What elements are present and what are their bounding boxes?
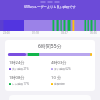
button[interactable]: 1時24分 (8, 60, 50, 71)
staticText: 深い睡眠 62% (54, 67, 71, 71)
staticText: 03:37 (61, 31, 68, 35)
staticText: 23:00 (3, 31, 10, 35)
staticText: 1時08分 (9, 75, 25, 81)
button[interactable]: 4時03分 (50, 60, 92, 71)
button[interactable]: 6時間55分 (5, 40, 95, 91)
staticText: レム睡眠 17% (12, 82, 29, 86)
staticText: 浅い睡眠 21% (12, 67, 29, 71)
staticText: 6時間55分 (38, 43, 62, 50)
button[interactable]: 1時08分 (8, 75, 50, 86)
staticText: 05:56 (90, 31, 97, 35)
staticText: 1時24分 (9, 60, 25, 66)
staticText: 覚醒時間 (54, 82, 65, 85)
staticText: 4時03分 (51, 60, 67, 66)
button[interactable]: 10 分 (50, 75, 92, 85)
staticText: 01:18 (32, 31, 39, 35)
staticText: 10 分 (51, 75, 62, 81)
staticText: 65%のユーザーよりも良い睡眠です (24, 5, 76, 9)
